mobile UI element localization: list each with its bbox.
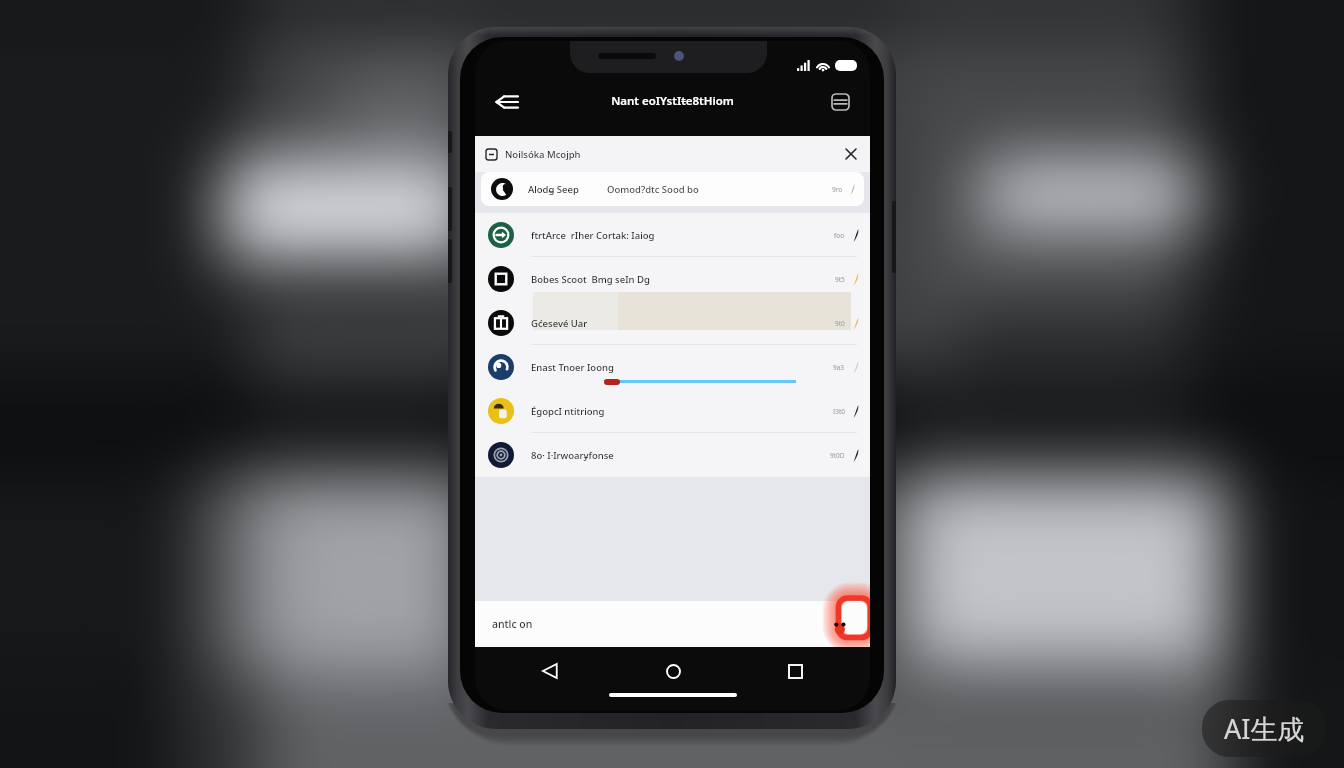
staticText: 9t5	[835, 275, 845, 284]
staticText: 8o· I·Irwoary̵fonse	[531, 449, 614, 462]
staticText: Gćesevé Uar	[531, 317, 588, 330]
staticText: Bobes Scoot Bmg seIn Dg	[531, 273, 650, 286]
staticText: Oomod?dtc Sood bo	[607, 183, 699, 196]
button[interactable]: Enast Tnoer Ioong	[475, 345, 870, 389]
staticText: 9a3	[833, 363, 845, 372]
staticText: I3t0	[833, 407, 845, 416]
button[interactable]: antlc on	[475, 601, 870, 647]
staticText: Alodg̵ Seep	[528, 183, 579, 196]
button[interactable]: Alodg̵ Seep	[481, 172, 864, 206]
button[interactable]: ÉgopcI ntitriong	[475, 389, 870, 433]
button[interactable]: Back	[489, 84, 525, 120]
staticText: 9ro	[832, 185, 843, 194]
staticText: 9t0D	[830, 451, 845, 460]
staticText: foo	[834, 231, 845, 240]
staticText: ftrtArce rIher Cortak: Iaiog	[531, 229, 655, 242]
button[interactable]: Close	[843, 146, 859, 162]
staticText: ÉgopcI ntitriong	[531, 405, 605, 418]
staticText: 9t0	[835, 319, 845, 328]
button[interactable]: Add	[830, 597, 870, 643]
staticText: Enast Tnoer Ioong	[531, 361, 614, 374]
staticText: Noilsóka Mcojph	[505, 148, 581, 161]
button[interactable]: Noilsóka Mcojph	[475, 136, 870, 172]
button[interactable]: Recents	[780, 656, 810, 686]
button[interactable]: Bobes Scoot Bmg seIn Dg	[475, 257, 870, 301]
button[interactable]: Gćesevé Uar	[475, 301, 870, 345]
staticText: AI生成	[1224, 710, 1305, 747]
staticText: antlc on	[492, 617, 533, 631]
button[interactable]: Menu	[824, 86, 856, 118]
button[interactable]: 8o· I·Irwoary̵fonse	[475, 433, 870, 477]
staticText: Nant eoIYstIt̵e8tHiom	[611, 93, 734, 109]
button[interactable]: Back	[535, 656, 565, 686]
button[interactable]: ftrtArce rIher Cortak: Iaiog	[475, 213, 870, 257]
button[interactable]: Home	[658, 656, 688, 686]
